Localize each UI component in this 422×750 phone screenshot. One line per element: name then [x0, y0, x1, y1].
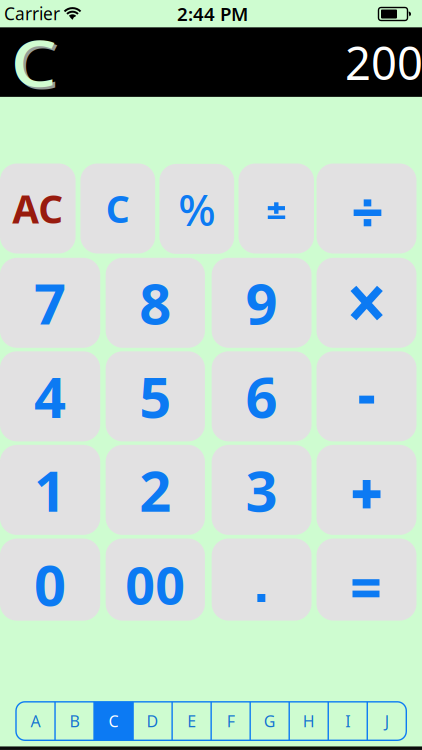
- staticText: E: [187, 710, 196, 732]
- staticText: 1: [34, 453, 66, 527]
- button[interactable]: Clear: [80, 163, 155, 253]
- button[interactable]: All clear: [0, 163, 76, 253]
- button[interactable]: C: [94, 702, 133, 740]
- staticText: Carrier: [4, 2, 60, 25]
- button[interactable]: 4: [0, 351, 100, 441]
- button[interactable]: A: [16, 702, 55, 740]
- button[interactable]: H: [289, 702, 328, 740]
- staticText: 8: [139, 266, 171, 340]
- button[interactable]: Subtract: [316, 351, 416, 441]
- staticText: 6: [246, 359, 278, 434]
- staticText: 2:44 PM: [177, 1, 248, 26]
- button[interactable]: 6: [212, 351, 312, 441]
- button[interactable]: 2: [106, 445, 205, 535]
- button[interactable]: 8: [106, 258, 205, 348]
- staticText: C: [16, 22, 57, 107]
- button[interactable]: D: [133, 702, 172, 740]
- staticText: D: [147, 710, 159, 732]
- button[interactable]: F: [211, 702, 250, 740]
- button[interactable]: Multiply: [316, 258, 416, 348]
- button[interactable]: B: [55, 702, 94, 740]
- button[interactable]: Add: [316, 445, 416, 535]
- staticText: 7: [34, 266, 66, 340]
- staticText: 200: [345, 32, 422, 93]
- staticText: 9: [246, 266, 278, 340]
- staticText: I: [345, 710, 350, 732]
- staticText: 4: [34, 359, 66, 434]
- staticText: %: [178, 180, 215, 238]
- button[interactable]: G: [250, 702, 289, 740]
- staticText: 2: [139, 453, 171, 527]
- button[interactable]: E: [172, 702, 211, 740]
- staticText: AC: [12, 183, 63, 234]
- staticText: C: [13, 19, 54, 104]
- staticText: F: [227, 710, 235, 732]
- staticText: 0: [34, 547, 66, 621]
- button[interactable]: 7: [0, 258, 100, 348]
- button[interactable]: 5: [106, 351, 205, 441]
- button[interactable]: Plus minus: [238, 163, 314, 253]
- staticText: C: [109, 710, 119, 732]
- staticText: H: [303, 710, 315, 732]
- staticText: A: [30, 710, 40, 732]
- staticText: 3: [246, 453, 278, 527]
- button[interactable]: Divide: [316, 163, 416, 253]
- button[interactable]: 9: [212, 258, 312, 348]
- button[interactable]: 0: [0, 539, 100, 621]
- button[interactable]: Decimal point: [212, 538, 312, 621]
- staticText: 5: [139, 359, 171, 434]
- button[interactable]: I: [328, 702, 367, 740]
- staticText: B: [69, 710, 79, 732]
- button[interactable]: 1: [0, 445, 100, 535]
- button[interactable]: 00: [106, 539, 205, 621]
- staticText: J: [385, 710, 389, 732]
- staticText: C: [106, 184, 130, 233]
- button[interactable]: Equals: [316, 538, 416, 621]
- staticText: G: [264, 710, 276, 732]
- button[interactable]: Percent: [159, 164, 234, 254]
- button[interactable]: 3: [212, 445, 312, 535]
- staticText: 00: [125, 550, 185, 619]
- button[interactable]: J: [367, 702, 406, 740]
